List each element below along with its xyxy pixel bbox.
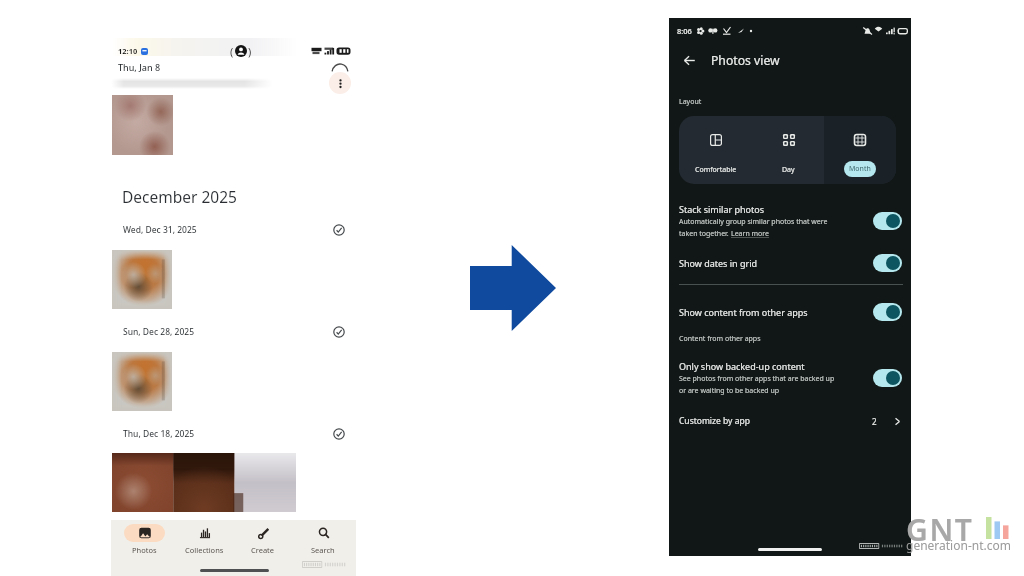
staticText: Search bbox=[311, 545, 335, 555]
staticText: Photos bbox=[132, 545, 157, 555]
button[interactable]: Day bbox=[752, 116, 824, 184]
staticText: GNT bbox=[906, 509, 974, 550]
staticText: Create bbox=[251, 545, 275, 555]
button[interactable]: Thu, Dec 18, 2025 bbox=[123, 427, 345, 441]
staticText: Automatically group similar photos that … bbox=[679, 217, 828, 227]
staticText: Customize by app bbox=[679, 415, 750, 427]
staticText: See photos from other apps that are back… bbox=[679, 374, 835, 384]
staticText: Day bbox=[782, 165, 795, 175]
button[interactable]: More options bbox=[329, 72, 351, 94]
button[interactable]: Search bbox=[296, 524, 350, 555]
button[interactable]: Collections bbox=[177, 524, 231, 555]
button[interactable]: Show content from other apps bbox=[679, 303, 902, 321]
button[interactable]: Only show backed-up content bbox=[873, 369, 902, 387]
staticText: Stack similar photos bbox=[679, 203, 765, 215]
staticText: taken together. bbox=[679, 229, 731, 239]
staticText: 2 bbox=[872, 416, 877, 427]
button[interactable]: Back bbox=[679, 50, 699, 70]
button[interactable]: Only show backed-up content bbox=[679, 360, 902, 396]
staticText: Collections bbox=[185, 545, 224, 555]
staticText: 8:06 bbox=[677, 26, 692, 36]
staticText: ( bbox=[230, 44, 234, 58]
staticText: Sun, Dec 28, 2025 bbox=[123, 326, 195, 338]
button[interactable]: Photos bbox=[117, 524, 171, 555]
button[interactable]: Customize by app bbox=[679, 413, 902, 429]
staticText: Month bbox=[849, 164, 871, 174]
button[interactable]: Show content from other apps bbox=[873, 303, 902, 321]
staticText: 12:10 bbox=[118, 46, 138, 56]
button[interactable]: Show dates in grid bbox=[679, 254, 902, 272]
staticText: ) bbox=[248, 44, 252, 58]
button[interactable]: Wed, Dec 31, 2025 bbox=[123, 223, 345, 237]
staticText: Wed, Dec 31, 2025 bbox=[123, 224, 197, 236]
staticText: December 2025 bbox=[122, 186, 237, 207]
staticText: Comfortable bbox=[695, 165, 737, 175]
staticText: Show dates in grid bbox=[679, 257, 758, 269]
staticText: Thu, Dec 18, 2025 bbox=[123, 428, 195, 440]
button[interactable]: Show dates in grid bbox=[873, 254, 902, 272]
staticText: Only show backed-up content bbox=[679, 360, 805, 372]
button[interactable]: Stack similar photos bbox=[873, 212, 902, 230]
staticText: Show content from other apps bbox=[679, 306, 808, 318]
button[interactable]: Stack similar photos bbox=[679, 203, 902, 239]
button[interactable]: Comfortable bbox=[679, 116, 752, 184]
staticText: generation-nt.com bbox=[906, 537, 1011, 553]
button[interactable]: Sun, Dec 28, 2025 bbox=[123, 325, 345, 339]
staticText: or are waiting to be backed up bbox=[679, 386, 780, 396]
staticText: Learn more bbox=[731, 229, 770, 239]
staticText: Thu, Jan 8 bbox=[118, 61, 161, 73]
staticText: Photos view bbox=[711, 52, 780, 69]
staticText: Content from other apps bbox=[679, 334, 761, 344]
button[interactable]: Month bbox=[824, 116, 896, 184]
button[interactable]: Create bbox=[236, 524, 290, 555]
staticText: Layout bbox=[679, 97, 702, 107]
